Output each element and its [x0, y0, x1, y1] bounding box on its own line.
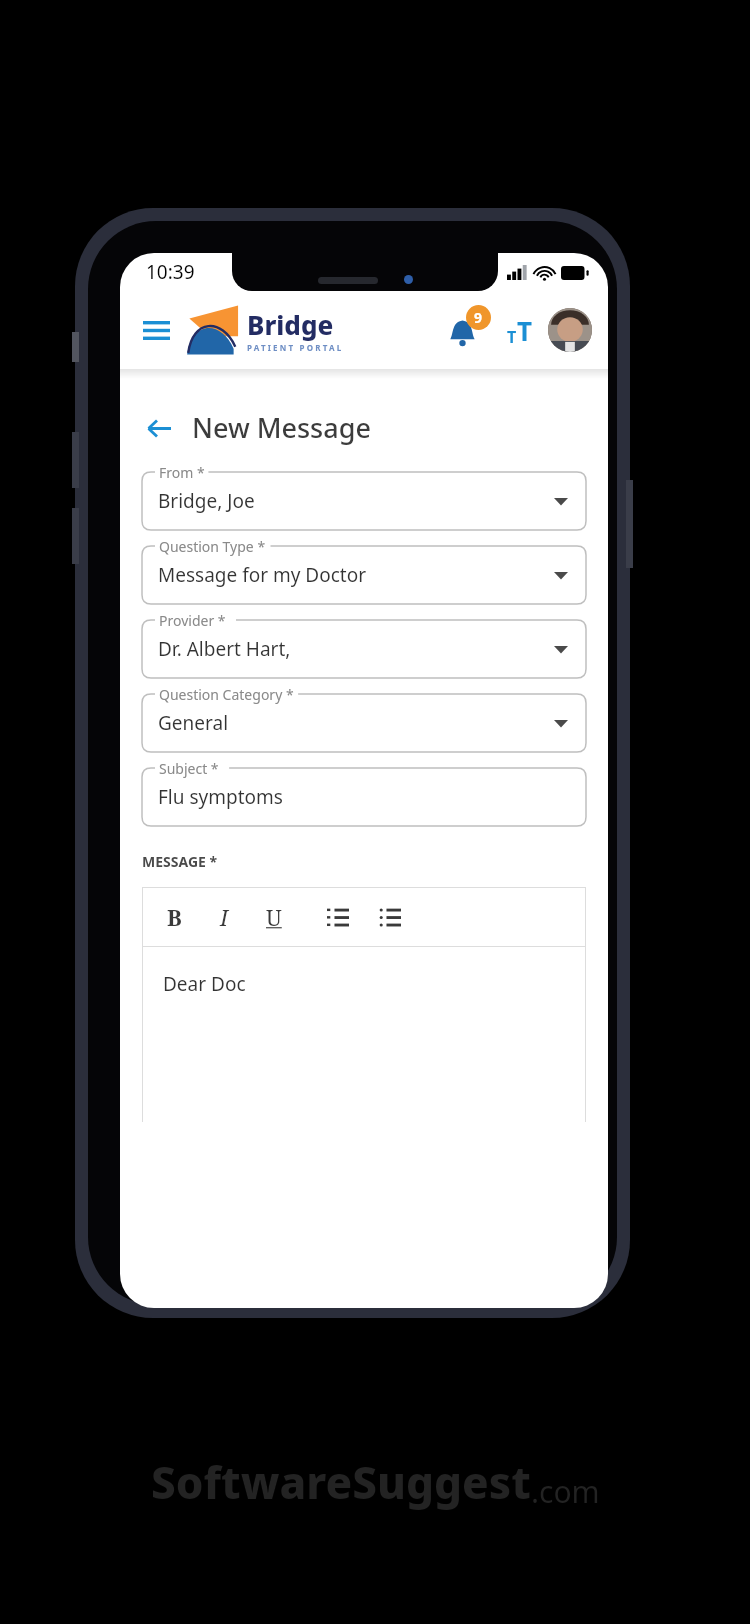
- button[interactable]: General: [142, 694, 586, 752]
- staticText: B: [167, 902, 182, 932]
- button[interactable]: Notifications: [442, 306, 490, 354]
- staticText: .com: [531, 1471, 600, 1512]
- other: Back: [142, 411, 176, 445]
- staticText: Question Category *: [159, 685, 294, 704]
- button[interactable]: B: [157, 900, 191, 934]
- staticText: Bridge: [247, 307, 334, 342]
- staticText: SoftwareSuggest: [151, 1452, 531, 1512]
- staticText: 9: [474, 308, 483, 327]
- staticText: Question Type *: [159, 537, 266, 556]
- staticText: PATIENT PORTAL: [247, 342, 344, 353]
- button[interactable]: Flu symptoms: [142, 768, 586, 826]
- staticText: T: [517, 313, 533, 348]
- staticText: MESSAGE *: [142, 852, 218, 871]
- staticText: 10:39: [146, 259, 195, 285]
- button[interactable]: Numbered list: [321, 900, 355, 934]
- staticText: Subject *: [159, 759, 219, 778]
- staticText: T: [507, 326, 517, 348]
- button[interactable]: Back: [142, 405, 371, 450]
- staticText: Message for my Doctor: [158, 562, 367, 588]
- button[interactable]: Profile: [548, 308, 592, 352]
- staticText: Bridge, Joe: [158, 488, 255, 514]
- staticText: Dr. Albert Hart,: [158, 636, 291, 662]
- staticText: From *: [159, 463, 205, 482]
- button[interactable]: I: [207, 900, 241, 934]
- button[interactable]: U: [257, 900, 291, 934]
- button[interactable]: Menu: [136, 310, 176, 350]
- button[interactable]: Bulleted list: [373, 900, 407, 934]
- button[interactable]: Text size: [498, 308, 542, 352]
- button[interactable]: Message for my Doctor: [142, 546, 586, 604]
- button[interactable]: Dear Doc: [143, 947, 585, 1122]
- staticText: I: [220, 902, 229, 932]
- staticText: Provider *: [159, 611, 226, 630]
- staticText: Dear Doc: [163, 971, 246, 997]
- staticText: U: [266, 902, 282, 932]
- staticText: General: [158, 710, 229, 736]
- button[interactable]: Bridge, Joe: [142, 472, 586, 530]
- staticText: New Message: [192, 409, 371, 446]
- button[interactable]: Dr. Albert Hart,: [142, 620, 586, 678]
- staticText: Flu symptoms: [158, 784, 283, 810]
